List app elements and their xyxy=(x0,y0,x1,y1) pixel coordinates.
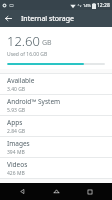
button[interactable]: Android™ System xyxy=(0,95,112,115)
staticText: Videos xyxy=(7,160,28,169)
button[interactable]: Images xyxy=(0,137,112,157)
staticText: 426 MB xyxy=(7,170,25,177)
button[interactable]: Apps xyxy=(0,116,112,136)
staticText: 12.60 xyxy=(7,32,40,50)
button[interactable]: Recent apps xyxy=(78,183,102,200)
button[interactable]: Back xyxy=(10,183,34,200)
staticText: 394 MB xyxy=(7,149,25,156)
staticText: Images xyxy=(7,139,30,148)
staticText: 2.84 GB xyxy=(7,128,26,135)
button[interactable]: Videos xyxy=(0,158,112,178)
staticText: Used of 16.00 GB xyxy=(7,51,48,58)
staticText: 3.40 GB xyxy=(7,86,26,93)
staticText: 5.93 GB xyxy=(7,107,26,114)
staticText: Internal storage xyxy=(21,14,74,24)
staticText: 12:28 xyxy=(97,2,110,9)
button[interactable]: Available xyxy=(0,74,112,94)
staticText: GB xyxy=(42,38,52,48)
staticText: Android™ System xyxy=(7,97,61,106)
button[interactable]: Home xyxy=(44,183,68,200)
staticText: 14% xyxy=(83,3,91,8)
button[interactable]: Navigate up xyxy=(0,10,17,27)
staticText: Available xyxy=(7,76,35,85)
staticText: Apps xyxy=(7,118,23,127)
